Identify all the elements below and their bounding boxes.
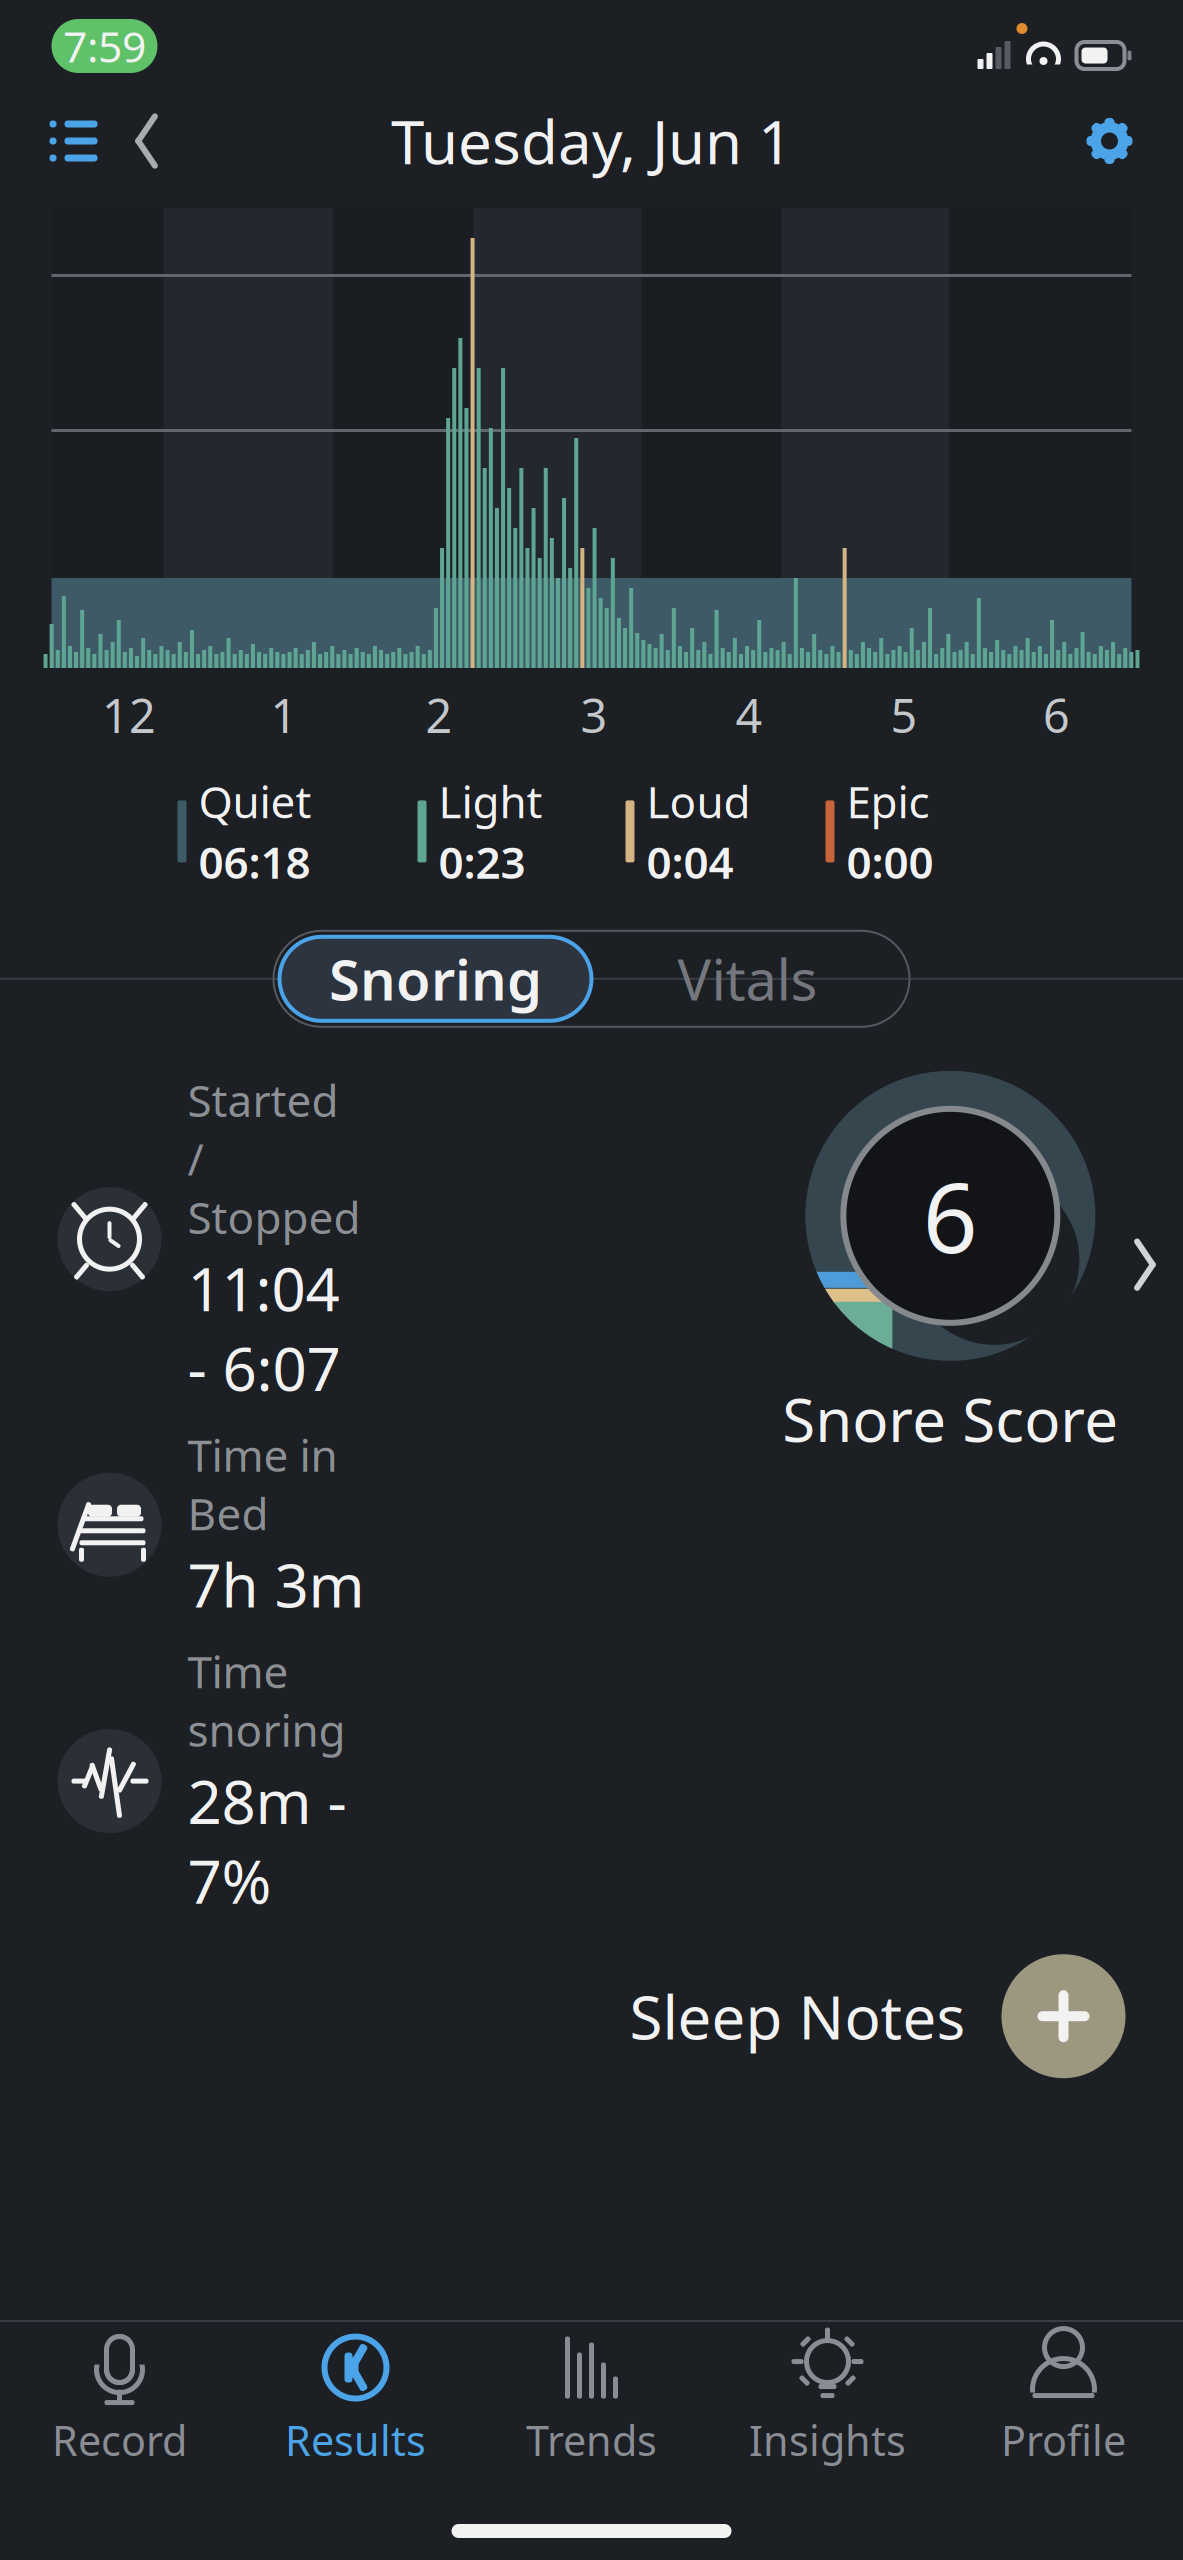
button[interactable]: Vitals	[591, 937, 903, 1021]
staticText: 1	[270, 684, 297, 746]
staticText: 28m - 7%	[187, 1761, 346, 1920]
button[interactable]: 6	[782, 1071, 1157, 1458]
staticText: Quiet	[198, 772, 311, 830]
button[interactable]: Add sleep note	[1001, 1954, 1125, 2078]
staticText: 5	[890, 684, 917, 746]
staticText: Time snoring	[187, 1642, 345, 1759]
staticText: 0:23	[438, 832, 525, 891]
staticText: Sleep Notes	[629, 1976, 965, 2056]
staticText: Snoring	[329, 942, 542, 1016]
staticText: Epic	[846, 772, 929, 830]
staticText: 12	[102, 684, 156, 746]
staticText: Record	[52, 2413, 187, 2467]
button[interactable]: Insights	[709, 2330, 945, 2466]
staticText: Tuesday, Jun 1	[391, 101, 792, 181]
staticText: 4	[735, 684, 762, 746]
staticText: Time in Bed	[187, 1425, 337, 1542]
button[interactable]: Results	[237, 2330, 473, 2466]
staticText: Light	[438, 772, 542, 830]
staticText: 7h 3m	[187, 1544, 364, 1624]
staticText: Loud	[646, 772, 750, 830]
staticText: 6	[923, 1152, 978, 1280]
staticText: 3	[580, 684, 607, 746]
staticText: Profile	[1001, 2413, 1126, 2467]
staticText: 11:04 - 6:07	[187, 1248, 340, 1407]
button[interactable]: Snoring	[279, 937, 591, 1021]
staticText: Snore Score	[782, 1379, 1118, 1458]
staticText: Insights	[749, 2413, 906, 2467]
staticText: Results	[285, 2413, 426, 2467]
button[interactable]: Trends	[473, 2330, 709, 2466]
staticText: 6	[1043, 684, 1070, 746]
staticText: 0:04	[646, 832, 733, 891]
staticText: Started / Stopped	[187, 1071, 360, 1246]
staticText: 06:18	[198, 832, 310, 891]
staticText: 2	[425, 684, 452, 746]
staticText: 0:00	[846, 832, 933, 891]
staticText: Vitals	[677, 942, 817, 1016]
button[interactable]: Settings	[1069, 101, 1149, 181]
button[interactable]: Sleep sessions list	[33, 101, 113, 181]
button[interactable]: Back	[113, 101, 179, 181]
staticText: Trends	[526, 2413, 657, 2467]
button[interactable]: Profile	[945, 2330, 1181, 2466]
staticText: 7:59	[63, 18, 146, 74]
button[interactable]: Record	[1, 2330, 237, 2466]
